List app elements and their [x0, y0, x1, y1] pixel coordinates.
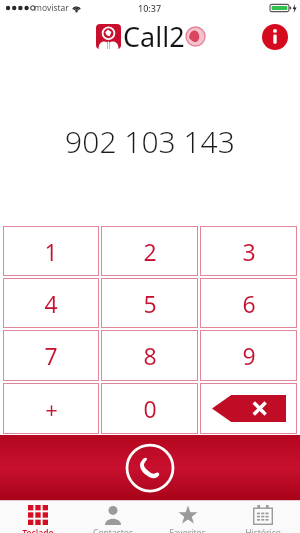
staticText: 902 103 143 [65, 121, 235, 162]
button[interactable]: Teclado [0, 501, 75, 533]
button[interactable]: 0 [102, 384, 197, 433]
staticText: 0 [143, 393, 157, 424]
staticText: 6 [242, 288, 256, 319]
staticText: 9 [242, 340, 256, 371]
button[interactable]: 4 [4, 279, 98, 327]
staticText: Histórico [245, 527, 281, 533]
button[interactable]: Contactos [75, 501, 150, 533]
button[interactable]: 5 [102, 279, 197, 327]
button[interactable]: Histórico [225, 501, 300, 533]
button[interactable]: + [4, 384, 98, 433]
other: Delete [212, 395, 286, 422]
button[interactable]: 1 [4, 227, 98, 275]
staticText: Contactos [93, 527, 133, 533]
button[interactable]: 7 [4, 331, 98, 380]
staticText: 3 [242, 236, 256, 267]
button[interactable]: Call [0, 435, 300, 500]
button[interactable]: 3 [201, 227, 296, 275]
button[interactable]: 6 [201, 279, 296, 327]
button[interactable]: 9 [201, 331, 296, 380]
button[interactable]: 8 [102, 331, 197, 380]
staticText: Teclado [22, 527, 54, 533]
staticText: 7 [44, 340, 58, 371]
staticText: movistar [34, 2, 69, 14]
button[interactable]: Delete [201, 384, 296, 433]
staticText: 4 [44, 288, 58, 319]
button[interactable]: Information [262, 24, 288, 50]
staticText: 8 [143, 340, 157, 371]
staticText: 2 [143, 236, 157, 267]
staticText: Call2 [123, 18, 185, 55]
staticText: + [45, 394, 58, 424]
staticText: Favoritos [169, 527, 206, 533]
staticText: 5 [143, 288, 157, 319]
staticText: 1 [44, 236, 58, 267]
button[interactable]: Favoritos [150, 501, 225, 533]
button[interactable]: 2 [102, 227, 197, 275]
staticText: 10:37 [138, 2, 162, 14]
